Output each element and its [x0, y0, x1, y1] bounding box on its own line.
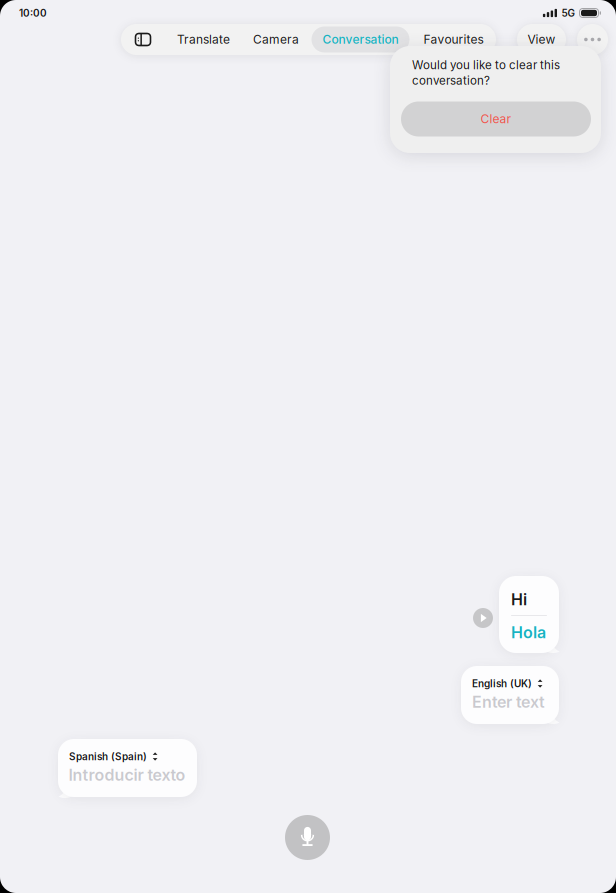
staticText: Enter text — [472, 692, 545, 712]
staticText: Hi — [511, 590, 527, 609]
staticText: View — [527, 32, 555, 47]
staticText: Hola — [511, 623, 546, 642]
staticText: 10:00 — [19, 7, 47, 19]
staticText: Would you like to clear this — [412, 58, 560, 72]
staticText: Camera — [253, 32, 299, 47]
button[interactable]: Spanish (Spain) — [58, 739, 197, 797]
staticText: Spanish (Spain) — [69, 750, 147, 763]
staticText: Favourites — [423, 32, 483, 47]
button[interactable]: Conversation — [310, 24, 411, 55]
staticText: English (UK) — [472, 677, 532, 690]
button[interactable]: Clear — [401, 101, 591, 136]
button[interactable]: Camera — [242, 24, 310, 55]
staticText: Clear — [480, 112, 511, 126]
staticText: Conversation — [322, 32, 398, 47]
button[interactable]: Play translation — [473, 608, 493, 628]
staticText: Translate — [177, 32, 230, 47]
button[interactable]: Start listening — [285, 815, 330, 860]
button[interactable]: Favourites — [411, 24, 496, 55]
staticText: Introducir texto — [68, 765, 185, 785]
staticText: conversation? — [412, 73, 490, 87]
staticText: 5G — [561, 7, 574, 19]
button[interactable]: Translate — [165, 24, 242, 55]
button[interactable]: Show Sidebar — [121, 24, 165, 55]
button[interactable]: English (UK) — [461, 666, 559, 724]
button[interactable]: More options — [577, 24, 608, 55]
button[interactable]: View — [517, 24, 566, 55]
